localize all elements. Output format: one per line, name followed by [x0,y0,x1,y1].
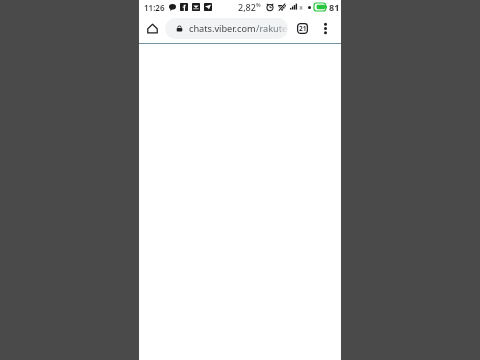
button[interactable]: Home [144,14,160,43]
staticText: chats.viber.com [189,22,256,35]
button[interactable]: Switch or close tabs, 21 open tabs [293,14,312,43]
staticText: 21 [299,24,307,33]
staticText: 81 [329,1,340,13]
staticText: 11:26 [144,2,165,13]
staticText: % [256,1,261,8]
button[interactable]: Search or type web address [165,18,288,39]
button[interactable]: More options [316,14,335,43]
staticText: /rakute [256,22,288,35]
staticText: 2,82 [238,1,256,13]
